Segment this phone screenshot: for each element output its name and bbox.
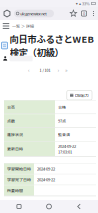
button[interactable]: Menu [0, 20, 12, 32]
staticText: 更新日時 [7, 146, 23, 152]
staticText: ▴ [79, 1, 81, 6]
button[interactable]: Bookmark [68, 7, 79, 20]
staticText: 向日市ふるさとWEB 検定（初級） [10, 32, 94, 59]
staticText: ▾ [76, 1, 78, 6]
staticText: 学習開始日時 [7, 166, 31, 172]
button[interactable]: Back [68, 200, 90, 213]
button[interactable]: ulcgenerator.net [14, 10, 54, 17]
button[interactable]: Previous page [25, 65, 33, 74]
staticText: 合否 [7, 104, 15, 110]
staticText: CSV出力 [75, 92, 89, 98]
staticText: 点数 [7, 118, 15, 124]
staticText: 33% [82, 1, 90, 6]
staticText: 学習完了日時 [7, 177, 31, 182]
staticText: 97点 [58, 118, 66, 124]
staticText: › [57, 66, 59, 74]
staticText: 一覧 ＞ 詳細 [12, 23, 34, 29]
staticText: 監査済 [58, 132, 70, 137]
staticText: ulcgenerator.net [20, 11, 47, 16]
button[interactable]: Home [0, 7, 14, 20]
staticText: » [65, 66, 68, 74]
staticText: ‹ [28, 66, 30, 74]
button[interactable]: Tabs [79, 7, 89, 20]
staticText: 2024-09-22 [37, 166, 55, 172]
staticText: 進捗状況 [7, 132, 23, 137]
button[interactable]: CSV出力 [67, 90, 92, 100]
staticText: 1 / 101 [39, 67, 50, 73]
button[interactable]: Recent apps [8, 200, 30, 213]
staticText: 所要時間 [7, 188, 23, 193]
button[interactable]: More options [89, 7, 98, 20]
staticText: 0 [83, 11, 85, 16]
button[interactable]: Last page [62, 65, 71, 74]
staticText: 合格 [58, 104, 66, 110]
staticText: 2024-09-22 [37, 177, 55, 182]
staticText: 2024-09-22 17:03:01 [58, 143, 76, 155]
button[interactable]: Home [38, 200, 60, 213]
button[interactable]: Next page [55, 65, 62, 74]
